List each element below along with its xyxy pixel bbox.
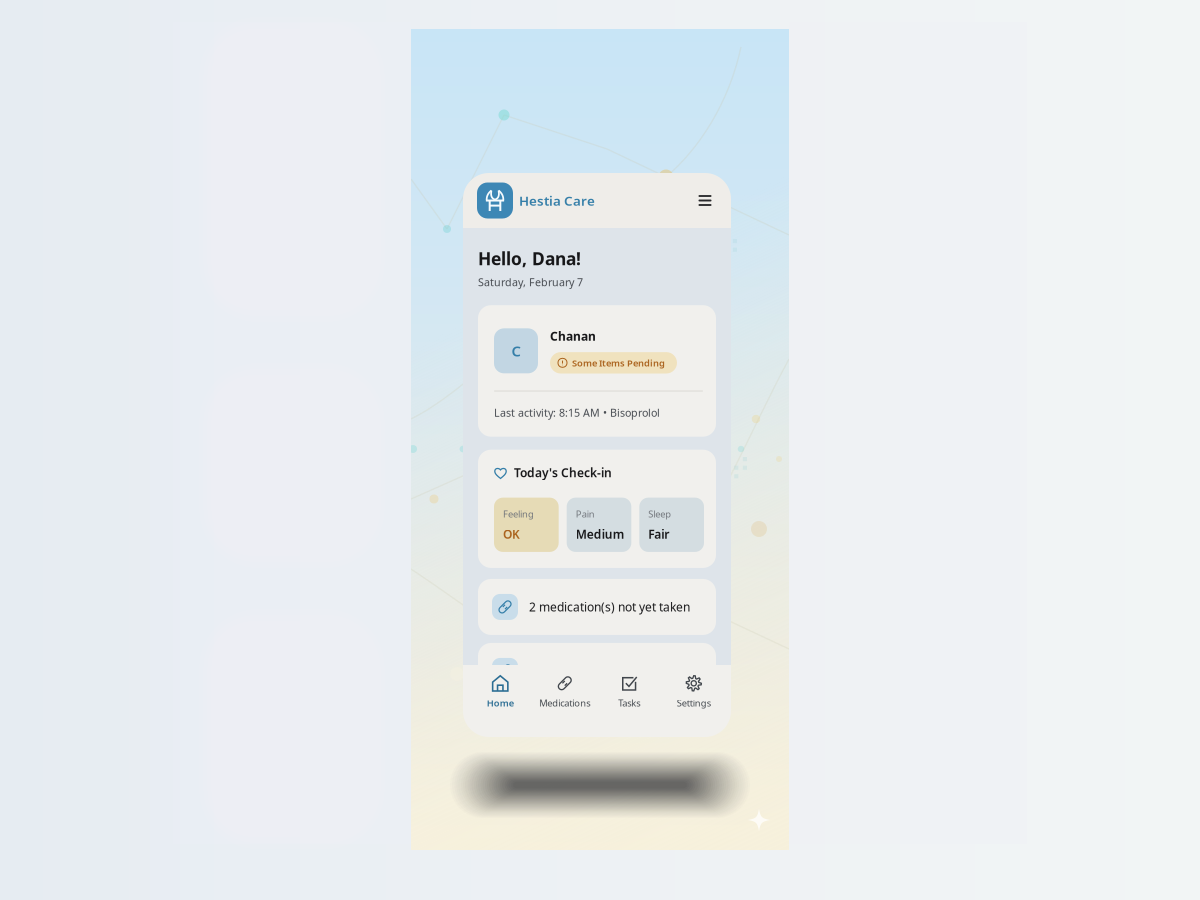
staticText: C [511,341,520,361]
button[interactable]: Feeling [494,498,559,552]
button[interactable]: C [478,305,716,437]
staticText: Home [487,697,514,709]
staticText: Feeling [503,508,534,520]
staticText: Hestia Care [519,192,595,209]
staticText: Medium [576,526,625,542]
staticText: Pain [576,508,595,520]
staticText: Tasks [618,697,640,709]
staticText: Some Items Pending [572,357,665,369]
staticText: Chanan [550,328,596,344]
staticText: OK [503,526,520,542]
button[interactable]: Menu [694,189,716,211]
staticText: Settings [677,697,711,709]
staticText: Medications [539,697,590,709]
staticText: Today's Check-in [514,465,612,481]
staticText: Saturday, February 7 [478,275,583,289]
button[interactable]: Settings [661,668,726,734]
staticText: Fair [648,526,669,542]
staticText: Last activity: 8:15 AM • Bisoprolol [494,405,660,420]
staticText: Sleep [648,508,671,520]
button[interactable]: 2 medication(s) not yet taken [478,579,716,635]
button[interactable] [478,643,716,699]
button[interactable]: Tasks [597,668,661,734]
staticText: 2 medication(s) not yet taken [529,599,690,615]
button[interactable]: Sleep [639,498,704,552]
button[interactable]: Medications [532,668,597,734]
button[interactable]: Home [468,668,532,734]
button[interactable]: Pain [567,498,631,552]
staticText: Hello, Dana! [478,247,581,270]
button[interactable]: Hestia Care [477,182,595,218]
